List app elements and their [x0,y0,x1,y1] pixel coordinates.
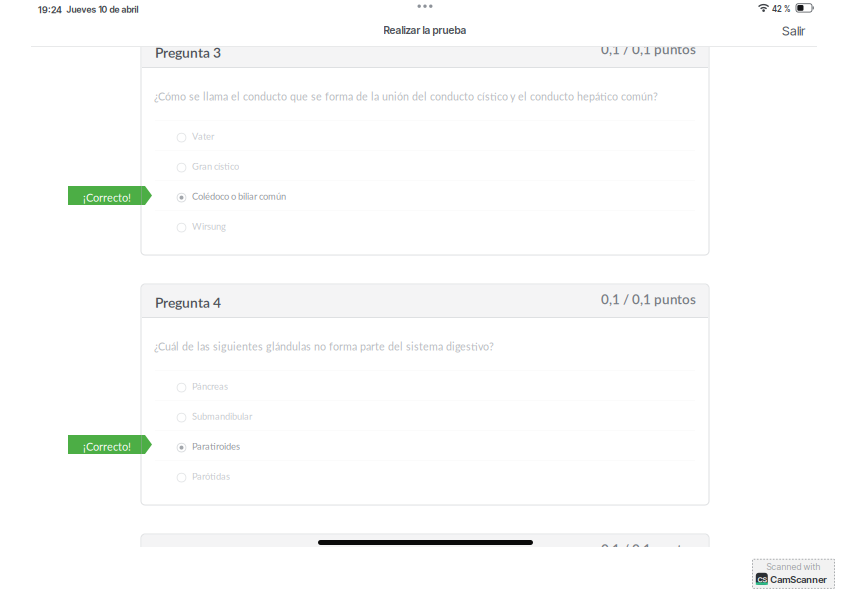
button[interactable]: Colédoco o biliar común [142,180,708,210]
staticText: Colédoco o biliar común [192,190,286,202]
button[interactable]: Wirsung [142,210,708,240]
staticText: Parótidas [192,470,230,482]
staticText: 0,1 / 0,1 puntos [601,41,696,57]
staticText: ¡Correcto! [83,191,131,204]
staticText: 42 % [772,4,790,14]
staticText: Pregunta 3 [155,44,221,61]
staticText: 19:24 [38,4,62,15]
button[interactable]: Salir [772,17,815,44]
staticText: Jueves 10 de abril [66,4,138,15]
staticText: Páncreas [192,380,228,392]
staticText: ¡Correcto! [83,440,131,453]
staticText: Wirsung [192,220,226,232]
staticText: ¿Cuál de las siguientes glándulas no for… [154,340,494,353]
staticText: Salir [782,23,805,38]
staticText: Paratiroides [192,440,240,452]
staticText: CamScanner [770,574,826,585]
staticText: ¿Cómo se llama el conducto que se forma … [154,90,658,103]
staticText: Gran cístico [192,160,239,172]
button[interactable]: Parótidas [142,460,708,490]
button[interactable]: Submandibular [142,400,708,430]
staticText: Vater [192,130,214,142]
staticText: Realizar la prueba [383,24,466,37]
staticText: Scanned with [766,561,820,572]
staticText: 0,1 / 0,1 puntos [601,291,696,307]
button[interactable]: Paratiroides [142,430,708,460]
button[interactable]: Gran cístico [142,150,708,180]
staticText: Submandibular [192,410,252,422]
staticText: Pregunta 4 [155,294,221,311]
staticText: 0,1 / 0,1 puntos [601,541,696,557]
staticText: Pregunta 5 [155,544,221,561]
staticText: CS [758,575,768,584]
